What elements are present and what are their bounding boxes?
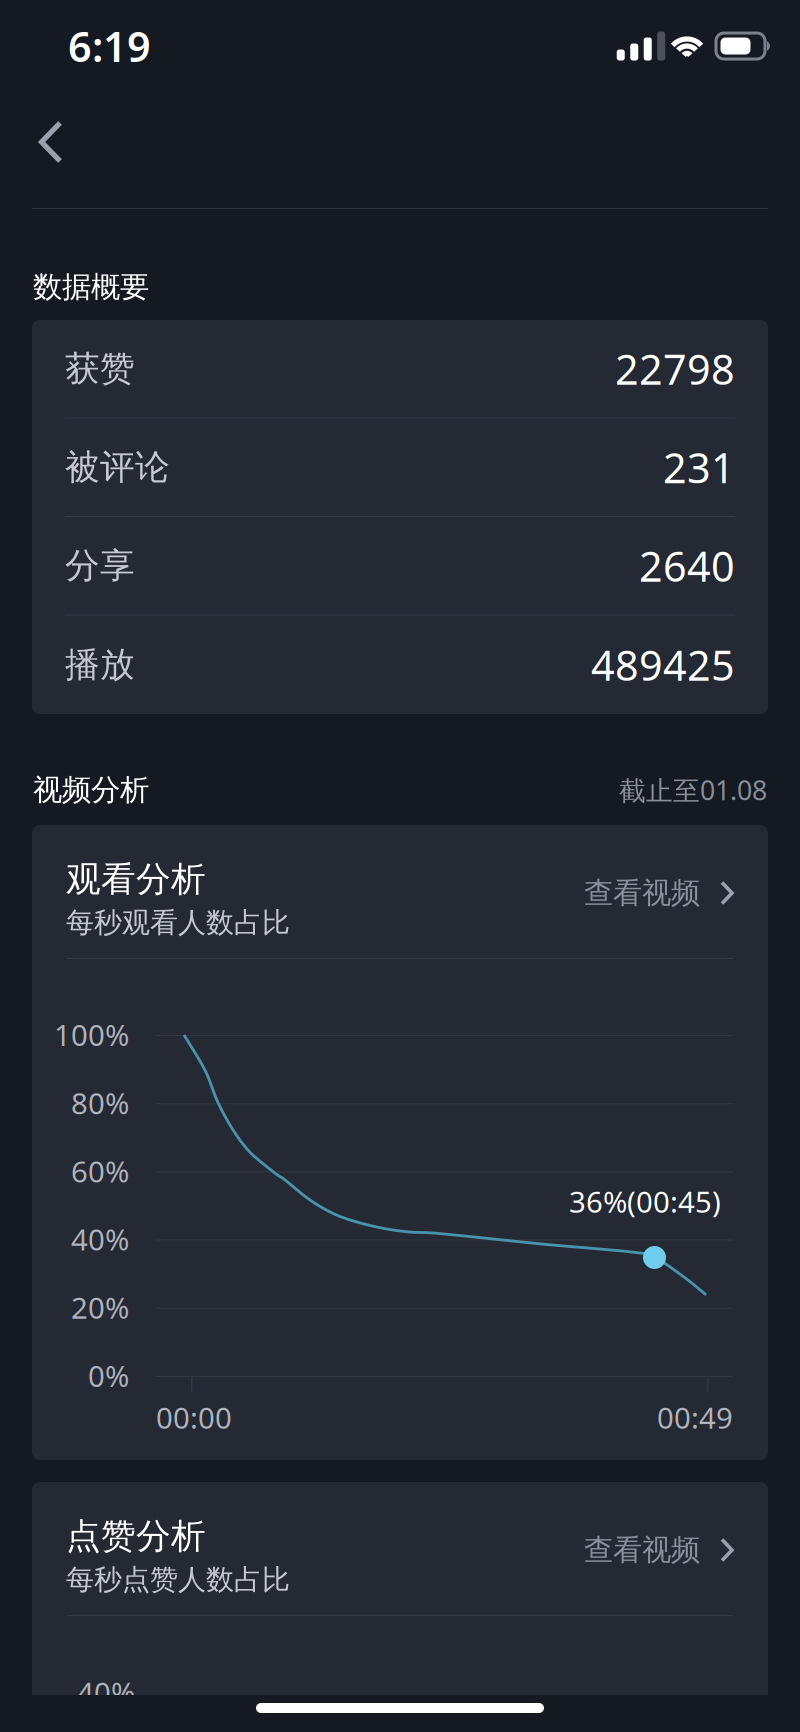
staticText: 每秒观看人数占比 xyxy=(66,906,290,940)
staticText: 查看视频 xyxy=(584,875,700,911)
staticText: 40% xyxy=(77,1673,135,1712)
staticText: 0% xyxy=(88,1356,129,1395)
button[interactable]: 查看视频 xyxy=(584,858,734,911)
staticText: 截止至01.08 xyxy=(619,772,767,808)
staticText: 被评论 xyxy=(65,446,170,489)
staticText: 60% xyxy=(71,1151,129,1190)
staticText: 20% xyxy=(71,1288,129,1327)
staticText: 80% xyxy=(71,1083,129,1122)
staticText: 231 xyxy=(663,440,735,495)
staticText: 观看分析 xyxy=(66,858,206,901)
staticText: 播放 xyxy=(65,643,135,686)
staticText: 00:49 xyxy=(657,1398,733,1437)
staticText: 100% xyxy=(54,1015,129,1054)
staticText: 00:00 xyxy=(156,1398,232,1437)
staticText: 40% xyxy=(71,1220,129,1259)
staticText: 每秒点赞人数占比 xyxy=(66,1563,290,1597)
staticText: 6:19 xyxy=(68,19,151,73)
staticText: 36%(00:45) xyxy=(569,1182,721,1221)
button[interactable]: 查看视频 xyxy=(584,1515,734,1568)
staticText: 点赞分析 xyxy=(66,1515,206,1558)
staticText: 获赞 xyxy=(65,347,135,390)
staticText: 22798 xyxy=(615,341,735,396)
staticText: 2640 xyxy=(639,538,735,593)
button[interactable]: Back xyxy=(38,102,102,182)
staticText: 分享 xyxy=(65,544,135,587)
staticText: 数据概要 xyxy=(33,269,149,305)
staticText: 视频分析 xyxy=(33,772,149,808)
staticText: 489425 xyxy=(591,637,735,692)
staticText: 查看视频 xyxy=(584,1532,700,1568)
